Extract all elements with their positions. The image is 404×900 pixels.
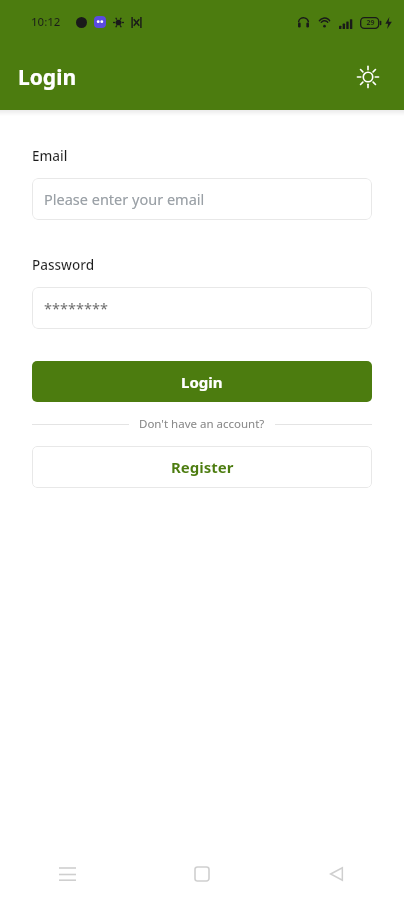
staticText: Register [171,457,234,477]
button[interactable]: Toggle theme [348,57,388,97]
button[interactable]: Register [32,446,372,488]
staticText: Password [32,256,95,274]
staticText: 10:12 [31,14,61,30]
staticText: 29 [366,18,375,28]
staticText: Don't have an account? [139,416,265,432]
button[interactable]: Login [32,361,372,402]
staticText: Please enter your email [44,189,205,209]
staticText: ******** [44,298,108,318]
staticText: Email [32,147,68,165]
button[interactable]: Recents [0,848,134,900]
button[interactable]: ******** [32,287,372,329]
button[interactable]: Back [269,848,404,900]
staticText: Login [18,63,77,92]
button[interactable]: Home [134,848,269,900]
button[interactable]: Please enter your email [32,178,372,220]
staticText: Login [181,372,223,392]
